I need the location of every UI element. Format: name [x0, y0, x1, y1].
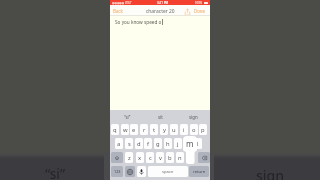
- staticText: 123: [114, 169, 121, 174]
- staticText: n: [178, 154, 182, 162]
- staticText: character 20: [146, 8, 175, 15]
- staticText: l: [197, 140, 199, 148]
- staticText: o: [192, 126, 196, 134]
- button[interactable]: v: [156, 152, 164, 163]
- staticText: u: [172, 126, 176, 134]
- staticText: z: [128, 154, 131, 162]
- staticText: sign: [189, 114, 198, 120]
- staticText: k: [186, 140, 190, 148]
- staticText: d: [137, 140, 141, 148]
- staticText: x: [138, 154, 142, 162]
- button[interactable]: Done: [192, 7, 207, 15]
- button[interactable]: Share: [184, 8, 191, 16]
- staticText: f: [147, 140, 149, 148]
- button[interactable]: Dictation: [137, 166, 146, 177]
- button[interactable]: z: [125, 152, 133, 163]
- button[interactable]: Back: [111, 7, 125, 15]
- staticText: Done: [194, 8, 206, 14]
- staticText: space: [162, 169, 174, 175]
- staticText: e: [132, 126, 136, 134]
- button[interactable]: d: [135, 138, 143, 149]
- staticText: sign: [256, 166, 285, 180]
- button[interactable]: c: [146, 152, 154, 163]
- button[interactable]: r: [140, 124, 148, 135]
- button[interactable]: b: [166, 152, 174, 163]
- staticText: ●●●●● AT&T: [112, 1, 132, 5]
- button[interactable]: f: [144, 138, 152, 149]
- staticText: g: [156, 140, 160, 148]
- staticText: i: [183, 126, 185, 134]
- staticText: b: [168, 154, 172, 162]
- button[interactable]: sit: [144, 110, 177, 123]
- button[interactable]: s: [125, 138, 133, 149]
- staticText: “si”: [124, 114, 131, 120]
- button[interactable]: k: [184, 138, 192, 149]
- button[interactable]: l: [194, 138, 202, 149]
- button[interactable]: return: [189, 166, 209, 177]
- button[interactable]: h: [164, 138, 172, 149]
- button[interactable]: p: [199, 124, 207, 135]
- staticText: “si”: [45, 165, 66, 179]
- button[interactable]: “si”: [110, 110, 144, 123]
- button[interactable]: space: [148, 166, 188, 177]
- button[interactable]: Delete: [198, 152, 210, 163]
- button[interactable]: w: [121, 124, 129, 135]
- staticText: r: [143, 126, 146, 134]
- button[interactable]: Emoji: [125, 166, 135, 177]
- staticText: 100%: [195, 1, 203, 5]
- button[interactable]: 123: [111, 166, 123, 177]
- staticText: 3:21 PM: [157, 1, 169, 5]
- staticText: Back: [113, 8, 123, 14]
- button[interactable]: g: [154, 138, 162, 149]
- button[interactable]: x: [136, 152, 144, 163]
- staticText: So you know speed o: [115, 19, 162, 25]
- button[interactable]: j: [174, 138, 182, 149]
- staticText: j: [177, 140, 179, 148]
- button[interactable]: t: [150, 124, 158, 135]
- button[interactable]: a: [115, 138, 123, 149]
- button[interactable]: o: [190, 124, 198, 135]
- staticText: w: [123, 126, 128, 134]
- staticText: q: [113, 126, 117, 134]
- staticText: s: [128, 140, 131, 148]
- button[interactable]: sign: [177, 110, 210, 123]
- staticText: h: [166, 140, 170, 148]
- button[interactable]: n: [176, 152, 184, 163]
- button[interactable]: Shift: [111, 152, 123, 163]
- staticText: return: [193, 169, 206, 175]
- button[interactable]: y: [160, 124, 168, 135]
- staticText: m: [186, 138, 194, 149]
- staticText: c: [149, 154, 152, 162]
- button[interactable]: e: [130, 124, 138, 135]
- staticText: t: [153, 126, 156, 134]
- staticText: a: [117, 140, 121, 148]
- button[interactable]: i: [180, 124, 188, 135]
- staticText: y: [163, 126, 166, 134]
- button[interactable]: u: [170, 124, 178, 135]
- staticText: v: [159, 154, 162, 162]
- staticText: p: [201, 126, 205, 134]
- button[interactable]: q: [111, 124, 119, 135]
- staticText: sit: [158, 114, 163, 120]
